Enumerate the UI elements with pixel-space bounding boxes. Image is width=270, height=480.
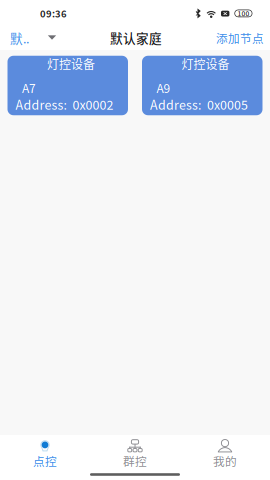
staticText: 灯控设备 [181,55,229,72]
staticText: A9 [157,79,171,96]
staticText: 默.. [10,29,29,47]
staticText: 我的 [213,453,237,469]
button[interactable]: 灯控设备 [142,56,262,115]
button[interactable]: 群控 [90,435,180,480]
staticText: 灯控设备 [47,55,95,72]
button[interactable]: 灯控设备 [7,56,128,115]
staticText: 09:36 [40,6,67,20]
staticText: 默认家庭 [110,29,162,47]
button[interactable]: 默.. [0,26,66,50]
staticText: 群控 [123,453,147,469]
button[interactable]: 我的 [180,435,270,480]
staticText: 添加节点 [216,30,264,46]
button[interactable]: 添加节点 [212,26,268,50]
staticText: Address: 0x0002 [15,95,113,113]
staticText: 100 [237,9,249,18]
staticText: A7 [22,79,36,96]
staticText: 点控 [33,453,57,469]
button[interactable]: 点控 [0,435,90,480]
staticText: Address: 0x0005 [150,95,248,113]
